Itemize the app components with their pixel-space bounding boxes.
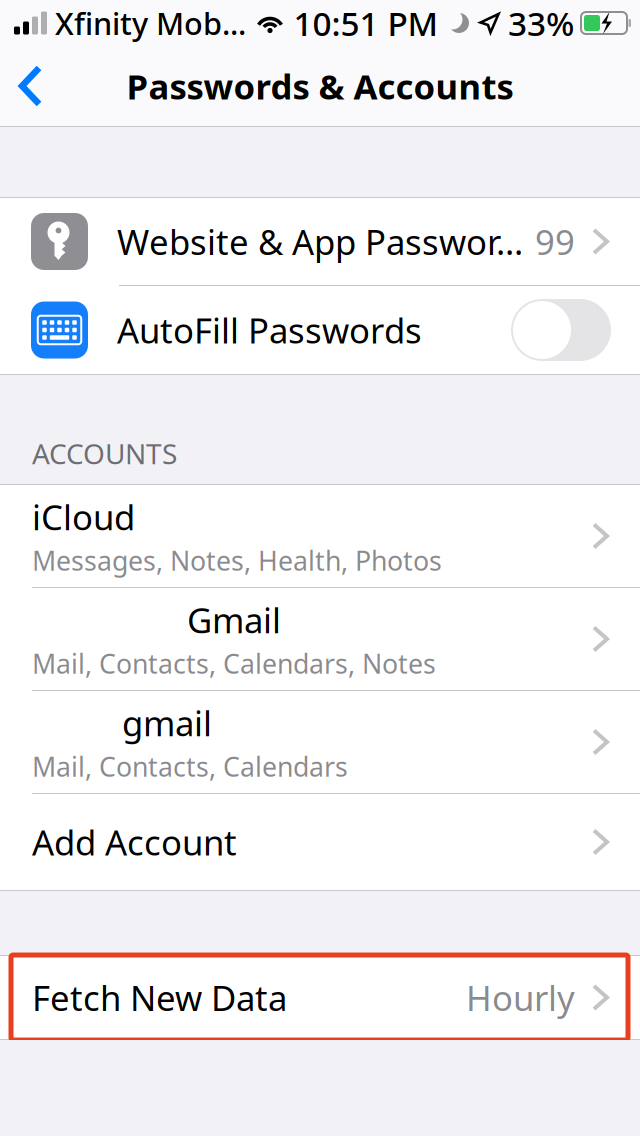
staticText: Messages, Notes, Health, Photos [32, 543, 442, 578]
button[interactable]: Fetch New Data [0, 956, 640, 1039]
button[interactable]: Back [0, 46, 57, 126]
button[interactable]: Website & App Passwor... [0, 198, 640, 285]
staticText: gmail [122, 700, 212, 746]
staticText: iCloud [32, 494, 135, 540]
staticText: 33% [508, 1, 574, 45]
staticText: Add Account [32, 819, 237, 865]
button[interactable]: gmail [0, 691, 640, 793]
staticText: Mail, Contacts, Calendars, Notes [32, 646, 436, 681]
button[interactable]: AutoFill Passwords [511, 299, 640, 361]
staticText: ACCOUNTS [32, 435, 177, 472]
staticText: Passwords & Accounts [126, 63, 513, 109]
button[interactable]: Gmail [0, 588, 640, 690]
staticText: 10:51 PM [293, 1, 438, 45]
staticText: Hourly [466, 974, 575, 1020]
staticText: Mail, Contacts, Calendars [32, 749, 348, 784]
button[interactable]: Add Account [0, 794, 640, 890]
staticText: Fetch New Data [32, 974, 287, 1020]
button[interactable]: iCloud [0, 485, 640, 587]
staticText: Gmail [187, 597, 281, 643]
staticText: 99 [535, 218, 575, 264]
staticText: AutoFill Passwords [117, 307, 422, 353]
staticText: Xfinity Mob... [55, 3, 246, 43]
staticText: Website & App Passwor... [117, 218, 523, 264]
